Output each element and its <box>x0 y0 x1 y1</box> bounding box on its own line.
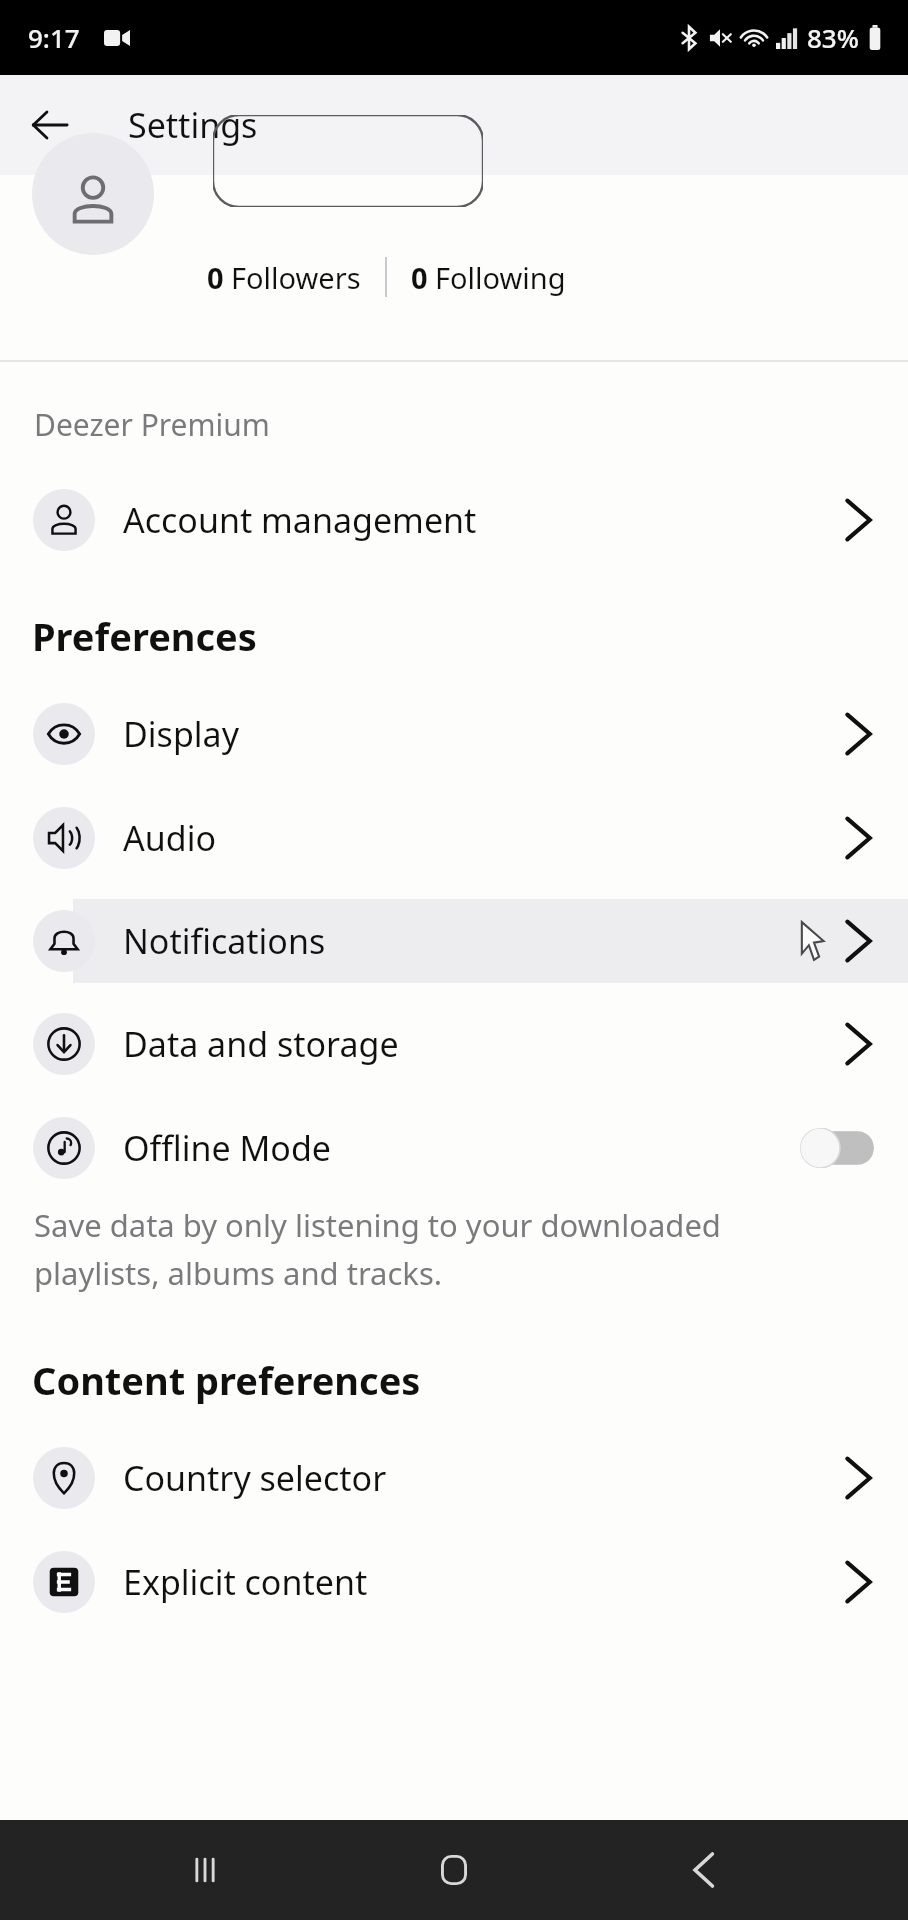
staticText: Following <box>435 258 566 297</box>
staticText: Account management <box>123 497 477 543</box>
button[interactable]: 0 <box>207 258 361 297</box>
button[interactable]: Offline Mode toggle <box>800 1128 874 1168</box>
staticText: 0 <box>411 258 428 297</box>
staticText: Offline Mode <box>123 1125 332 1171</box>
staticText: Save data by only listening to your down… <box>34 1204 721 1294</box>
staticText: Followers <box>231 258 361 297</box>
button[interactable]: Back <box>16 91 84 159</box>
staticText: Explicit content <box>123 1559 368 1605</box>
button[interactable]: Offline Mode <box>0 1106 908 1190</box>
staticText: 0 <box>207 258 224 297</box>
staticText: Settings <box>128 102 258 148</box>
button[interactable]: Home <box>409 1825 499 1915</box>
button[interactable]: Country selector <box>0 1436 908 1520</box>
button[interactable] <box>213 115 483 207</box>
button[interactable]: Back <box>659 1825 749 1915</box>
button[interactable]: Account management <box>0 478 908 562</box>
button[interactable]: Data and storage <box>0 1002 908 1086</box>
staticText: Preferences <box>32 610 257 662</box>
staticText: Display <box>123 711 239 757</box>
staticText: Country selector <box>123 1455 387 1501</box>
button[interactable]: Explicit content <box>0 1540 908 1624</box>
staticText: Content preferences <box>32 1354 421 1406</box>
button[interactable]: Display <box>0 692 908 776</box>
button[interactable]: Audio <box>0 796 908 880</box>
staticText: Audio <box>123 815 216 861</box>
staticText: Data and storage <box>123 1021 399 1067</box>
staticText: 9:17 <box>28 20 80 55</box>
button[interactable]: Notifications <box>0 899 908 983</box>
button[interactable]: Recent apps <box>160 1825 250 1915</box>
button[interactable]: 0 <box>411 258 566 297</box>
staticText: 83% <box>807 20 859 55</box>
staticText: Deezer Premium <box>34 404 270 445</box>
button[interactable] <box>32 133 154 255</box>
staticText: Notifications <box>123 918 326 964</box>
